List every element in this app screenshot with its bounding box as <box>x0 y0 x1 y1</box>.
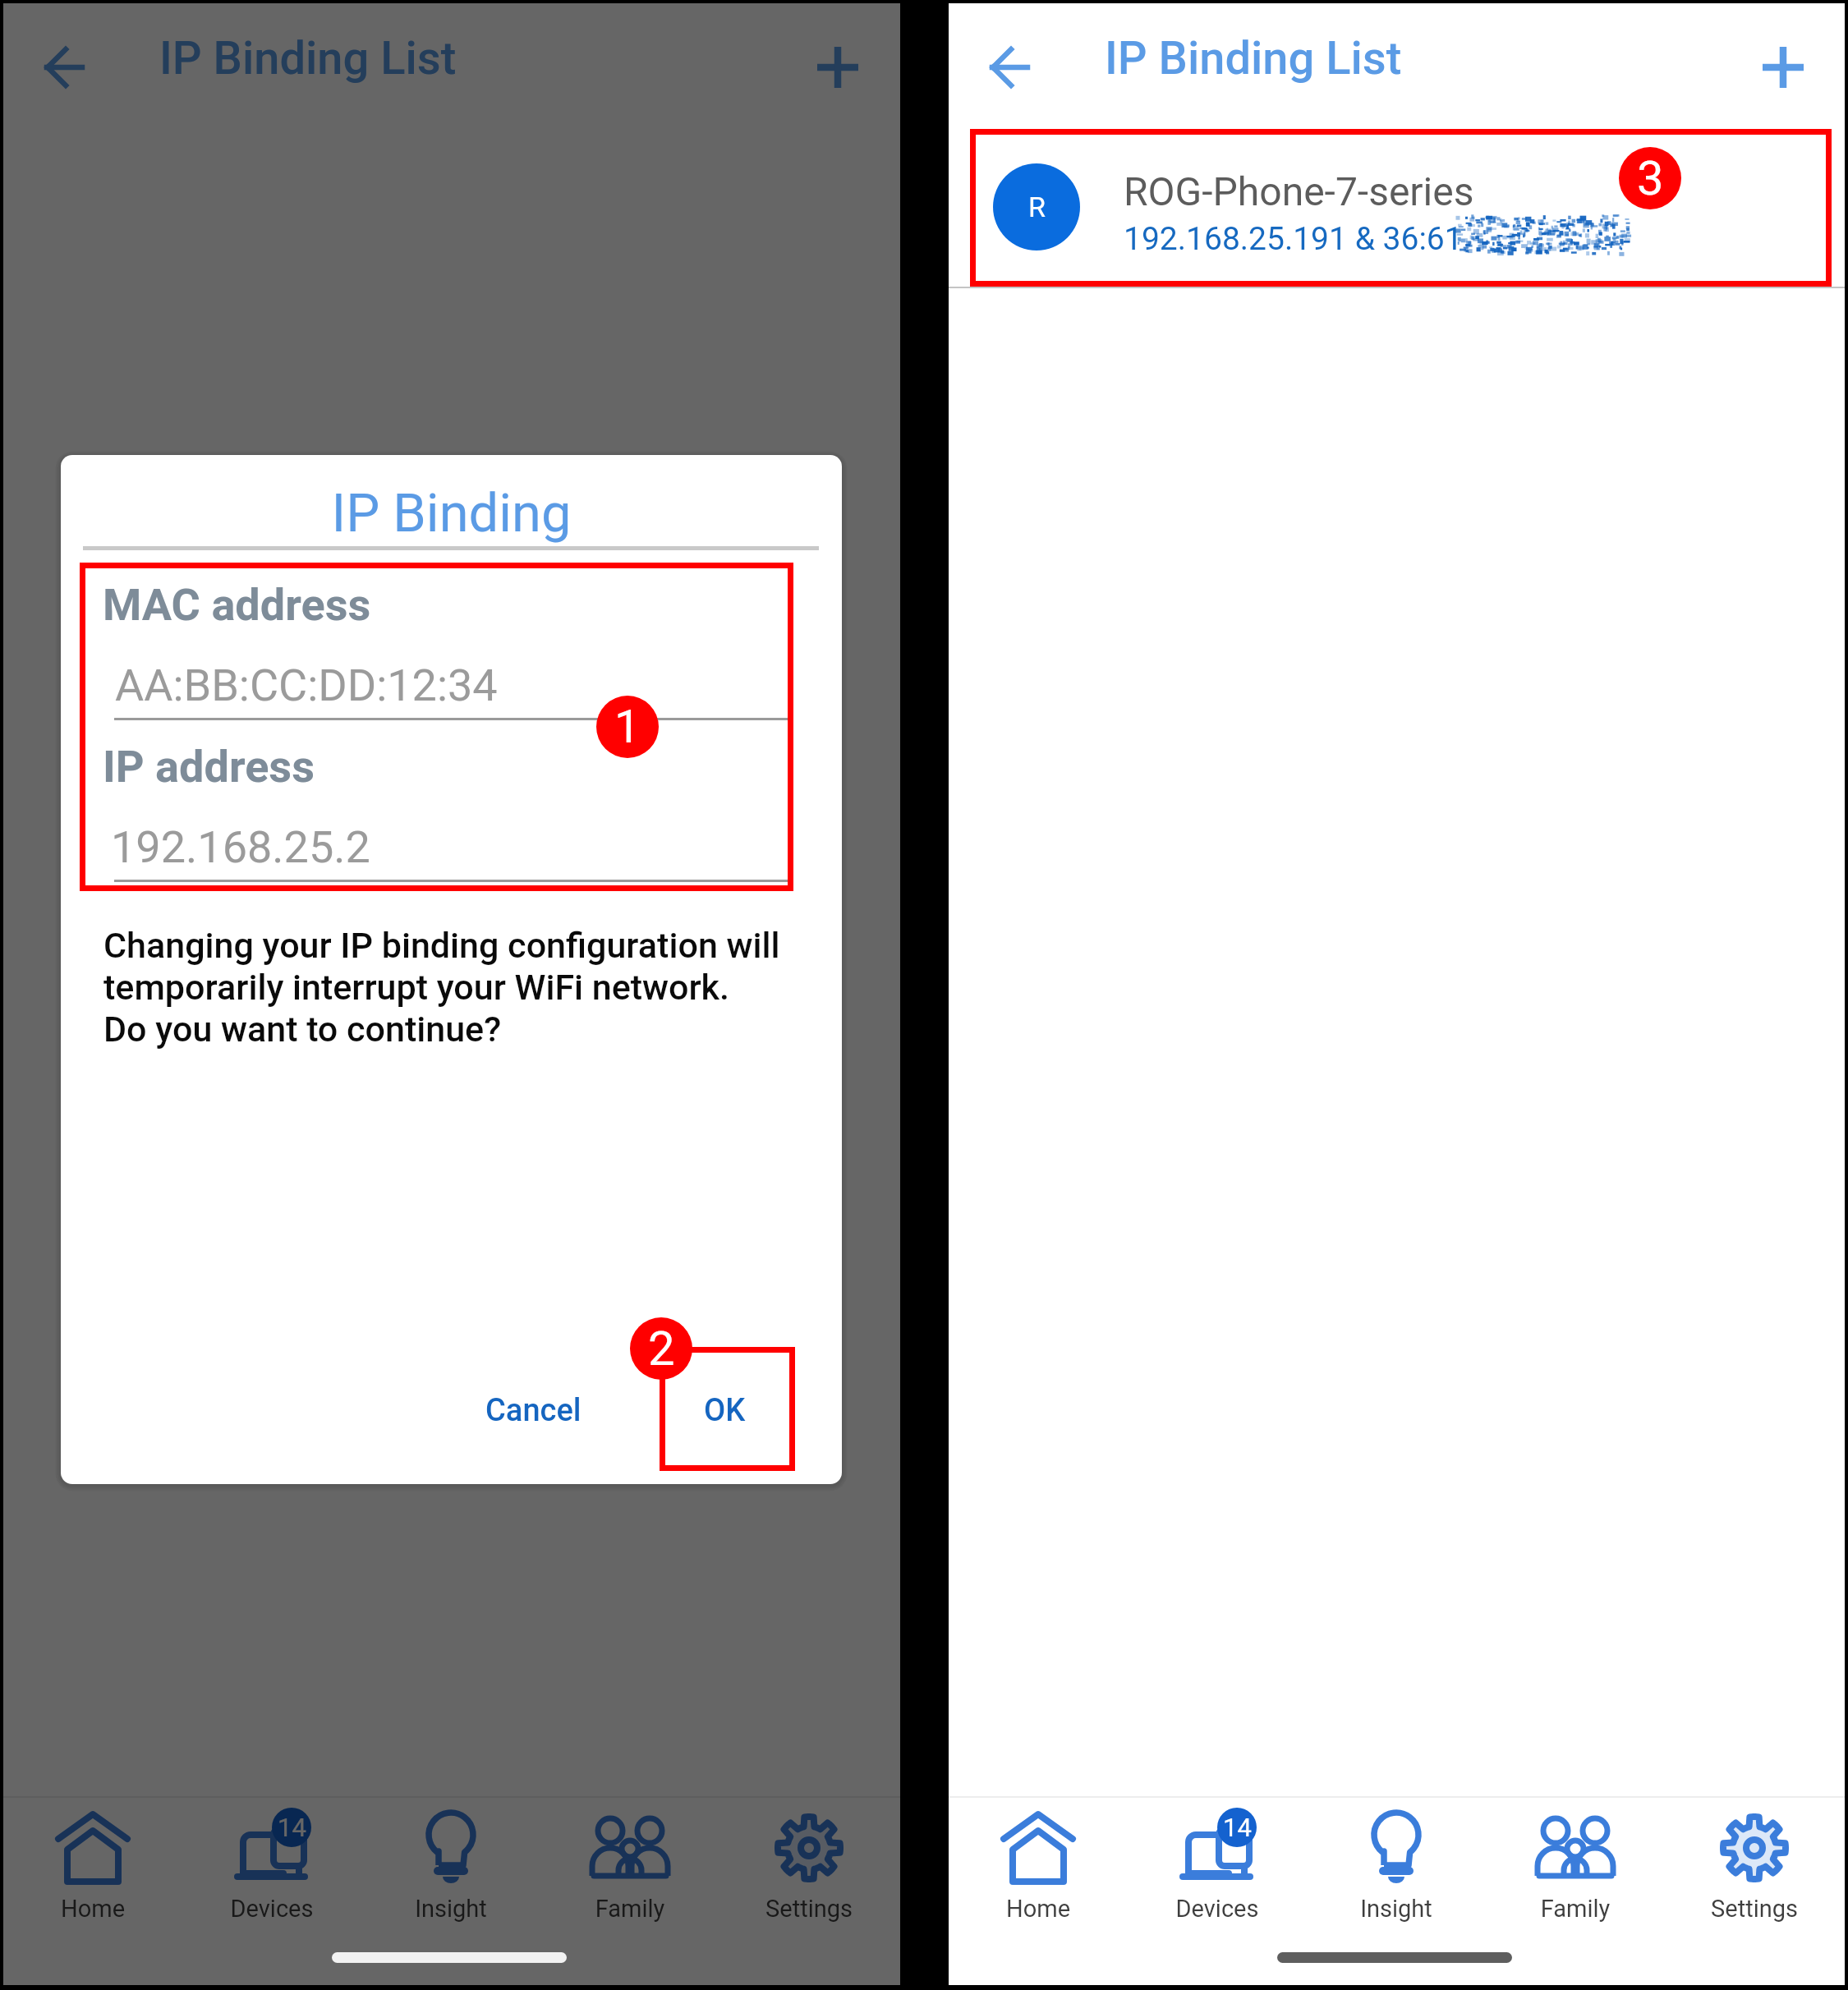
staticText: ROG-Phone-7-series <box>1124 168 1474 214</box>
button[interactable]: Insight <box>1307 1798 1486 1937</box>
staticText: Changing your IP binding configuration w… <box>103 925 780 1050</box>
staticText: R <box>1028 191 1046 223</box>
staticText: MAC address <box>103 579 371 631</box>
staticText: 14 <box>278 1813 306 1842</box>
button[interactable]: 14 <box>182 1798 361 1937</box>
staticText: Family <box>1486 1895 1665 1923</box>
staticText: Home <box>3 1895 182 1923</box>
staticText: 192.168.25.191 & 36:61 <box>1124 220 1463 258</box>
button[interactable]: Add <box>793 23 882 112</box>
staticText: IP Binding List <box>1105 31 1402 85</box>
button[interactable]: Home <box>3 1798 182 1937</box>
button[interactable]: Back <box>968 26 1050 108</box>
button[interactable]: Add <box>1739 23 1827 112</box>
button[interactable]: Home <box>949 1798 1128 1937</box>
button[interactable]: 14 <box>1128 1798 1307 1937</box>
staticText: Cancel <box>485 1392 582 1429</box>
staticText: Settings <box>1665 1895 1844 1923</box>
staticText: Devices <box>182 1895 361 1923</box>
staticText: 192.168.25.2 <box>111 821 370 873</box>
staticText: OK <box>704 1392 746 1429</box>
staticText: 2 <box>648 1321 675 1376</box>
staticText: Devices <box>1128 1895 1307 1923</box>
button[interactable]: R <box>949 129 1845 288</box>
staticText: 14 <box>1223 1813 1252 1842</box>
button[interactable]: OK <box>678 1376 770 1445</box>
staticText: AA:BB:CC:DD:12:34 <box>115 660 498 711</box>
staticText: IP Binding <box>61 482 842 545</box>
staticText: Insight <box>361 1895 540 1923</box>
button[interactable]: Family <box>540 1798 719 1937</box>
staticText: IP address <box>103 741 315 793</box>
button[interactable]: Back <box>23 26 105 108</box>
button[interactable]: Settings <box>719 1798 899 1937</box>
button[interactable]: Cancel <box>467 1376 599 1445</box>
button[interactable]: Settings <box>1665 1798 1844 1937</box>
staticText: IP Binding List <box>159 31 457 85</box>
staticText: 3 <box>1637 150 1664 206</box>
staticText: 1 <box>614 700 641 754</box>
button[interactable]: Family <box>1486 1798 1665 1937</box>
staticText: Insight <box>1307 1895 1486 1923</box>
staticText: Family <box>540 1895 719 1923</box>
button[interactable]: Insight <box>361 1798 540 1937</box>
staticText: Home <box>949 1895 1128 1923</box>
staticText: Settings <box>719 1895 899 1923</box>
